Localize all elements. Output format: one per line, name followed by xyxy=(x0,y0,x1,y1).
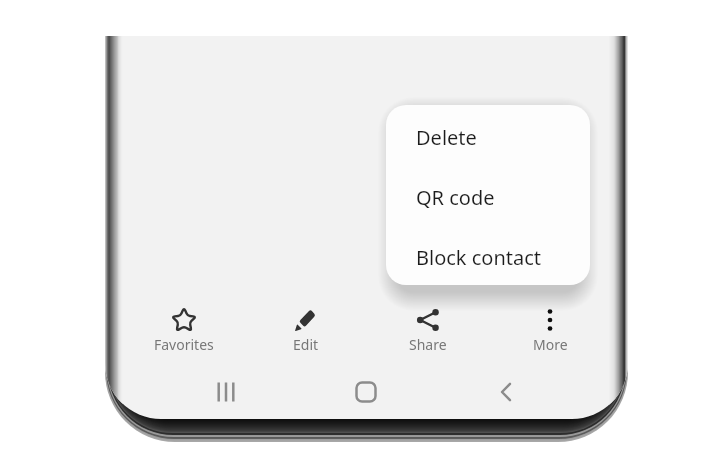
button[interactable]: Home xyxy=(344,370,388,414)
button[interactable]: Edit xyxy=(272,301,340,357)
button[interactable]: More xyxy=(516,301,584,357)
button[interactable]: QR code xyxy=(386,184,590,211)
button[interactable]: Share xyxy=(394,301,462,357)
staticText: Favorites xyxy=(154,335,214,354)
button[interactable]: Delete xyxy=(386,124,590,151)
button[interactable]: Back xyxy=(484,370,528,414)
button[interactable]: Favorites xyxy=(150,301,218,357)
staticText: Share xyxy=(409,335,447,354)
staticText: More xyxy=(533,335,568,354)
button[interactable]: Recent apps xyxy=(204,370,248,414)
staticText: Block contact xyxy=(416,244,542,271)
button[interactable]: Block contact xyxy=(386,244,590,271)
staticText: Delete xyxy=(416,124,477,151)
staticText: QR code xyxy=(416,184,495,211)
staticText: Edit xyxy=(293,335,319,354)
